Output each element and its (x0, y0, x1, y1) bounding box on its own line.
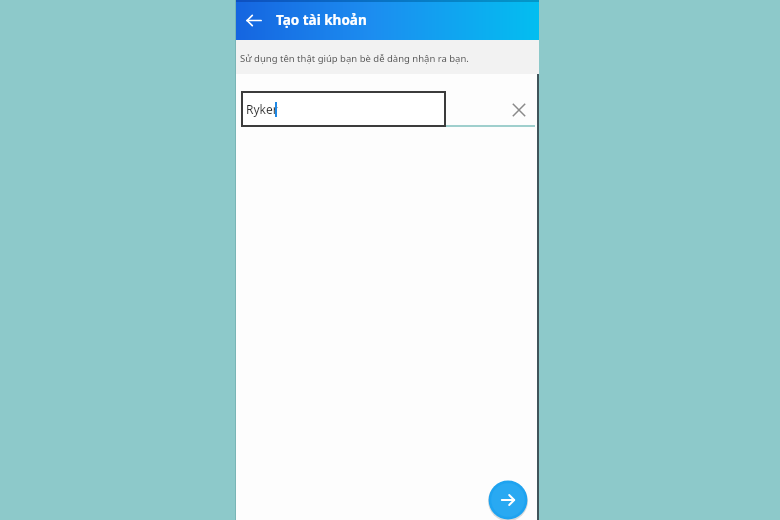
button[interactable]: Back (240, 7, 267, 34)
button[interactable]: Next (488, 480, 528, 520)
staticText: Sử dụng tên thật giúp bạn bè dễ dàng nhậ… (240, 52, 469, 65)
staticText: Tạo tài khoản (276, 11, 367, 29)
button[interactable]: Ryker (241, 91, 446, 127)
button[interactable]: Clear text (508, 99, 530, 121)
staticText: Ryker (246, 101, 278, 117)
